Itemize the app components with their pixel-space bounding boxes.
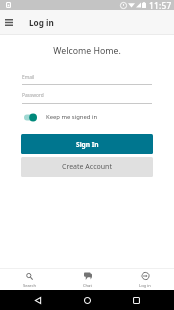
staticText: Log in	[139, 283, 151, 289]
staticText: 11:57	[149, 0, 172, 10]
staticText: Keep me signed in	[46, 113, 98, 121]
button[interactable]: Sign In	[21, 134, 153, 154]
button[interactable]: Open navigation menu	[0, 10, 17, 35]
button[interactable]: Log in	[116, 269, 174, 290]
staticText: Log in	[29, 17, 54, 28]
staticText: Sign In	[76, 140, 99, 149]
staticText: Password	[22, 92, 44, 99]
button[interactable]: Home	[77, 290, 97, 310]
button[interactable]: Chat	[58, 269, 116, 290]
button[interactable]: Search	[0, 269, 58, 290]
staticText: Create Account	[62, 162, 112, 172]
button[interactable]: Create Account	[21, 157, 153, 177]
staticText: Email	[22, 74, 35, 81]
button[interactable]: Back	[28, 290, 48, 310]
staticText: Welcome Home.	[0, 45, 174, 57]
staticText: Chat	[83, 283, 92, 289]
button[interactable]: Keep me signed in	[24, 111, 174, 123]
button[interactable]: Recent apps	[126, 290, 146, 310]
staticText: Search	[23, 283, 36, 289]
